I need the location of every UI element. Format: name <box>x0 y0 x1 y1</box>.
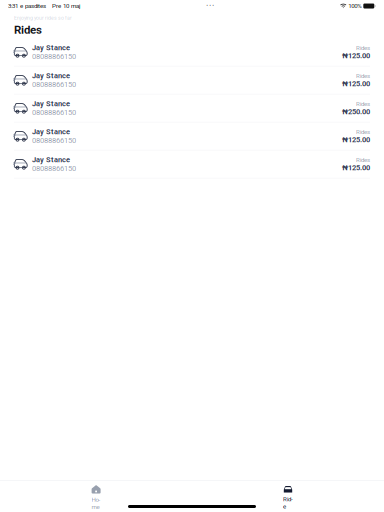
staticText: Home <box>91 496 100 510</box>
staticText: ₦125.00 <box>342 135 370 144</box>
staticText: 08088866150 <box>32 164 76 173</box>
staticText: Jay Stance <box>32 71 70 80</box>
staticText: 08088866150 <box>32 80 76 89</box>
staticText: Rides <box>356 72 370 79</box>
staticText: Jay Stance <box>32 155 70 164</box>
staticText: 100% <box>348 2 361 10</box>
staticText: Rides <box>356 100 370 107</box>
staticText: Ride <box>283 495 293 510</box>
staticText: ₦125.00 <box>342 79 370 88</box>
staticText: ₦125.00 <box>342 51 370 60</box>
staticText: Rides <box>356 156 370 163</box>
button[interactable]: Jay Stance <box>0 94 384 122</box>
button[interactable]: Jay Stance <box>0 66 384 94</box>
staticText: Rides <box>356 44 370 51</box>
button[interactable]: Jay Stance <box>0 38 384 66</box>
button[interactable]: Home <box>48 485 144 510</box>
staticText: Jay Stance <box>32 127 70 136</box>
staticText: 08088866150 <box>32 136 76 145</box>
staticText: ₦125.00 <box>342 163 370 172</box>
staticText: 08088866150 <box>32 52 76 61</box>
staticText: Rides <box>14 23 42 36</box>
staticText: 08088866150 <box>32 108 76 117</box>
staticText: Rides <box>356 128 370 135</box>
staticText: Jay Stance <box>32 43 70 52</box>
staticText: • • • <box>206 3 214 9</box>
button[interactable]: Jay Stance <box>0 150 384 178</box>
button[interactable]: Ride <box>240 485 336 510</box>
staticText: Enjoying your rides so far <box>14 15 72 21</box>
staticText: Jay Stance <box>32 99 70 108</box>
staticText: ₦250.00 <box>342 107 370 116</box>
staticText: 3:31 e pasdites Pre 10 maj <box>8 2 80 10</box>
button[interactable]: Jay Stance <box>0 122 384 150</box>
